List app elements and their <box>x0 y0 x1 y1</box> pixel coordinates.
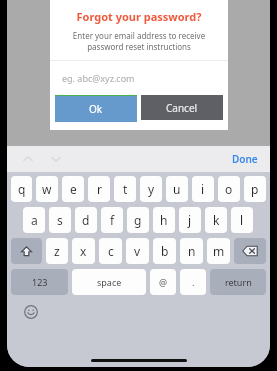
staticText: Ok <box>89 102 103 116</box>
staticText: Cancel <box>166 101 198 115</box>
button[interactable]: eg. abc@xyz.com <box>50 61 228 95</box>
staticText: @ <box>159 276 168 288</box>
staticText: u <box>173 181 181 197</box>
button[interactable]: e <box>62 176 84 202</box>
button[interactable]: 123 <box>11 269 68 295</box>
staticText: a <box>31 212 38 228</box>
button[interactable]: x <box>72 238 95 264</box>
staticText: p <box>251 181 259 197</box>
staticText: n <box>188 243 196 259</box>
staticText: c <box>108 243 114 259</box>
button[interactable]: y <box>140 176 162 202</box>
button[interactable]: q <box>11 176 32 202</box>
staticText: Done <box>232 152 258 166</box>
button[interactable]: @ <box>150 269 176 295</box>
button[interactable]: c <box>99 238 122 264</box>
button[interactable]: Done <box>226 149 264 169</box>
staticText: h <box>160 212 168 228</box>
button[interactable]: o <box>218 176 240 202</box>
button[interactable]: l <box>231 207 253 233</box>
button[interactable]: p <box>244 176 266 202</box>
staticText: eg. abc@xyz.com <box>62 72 135 84</box>
button[interactable]: d <box>75 207 97 233</box>
button[interactable]: n <box>180 238 203 264</box>
button[interactable]: Shift <box>11 238 42 264</box>
staticText: f <box>110 212 115 228</box>
button[interactable]: k <box>205 207 227 233</box>
button[interactable]: t <box>114 176 136 202</box>
staticText: z <box>54 243 60 259</box>
staticText: w <box>42 181 52 197</box>
button[interactable]: Ok <box>55 95 137 122</box>
button[interactable]: r <box>88 176 110 202</box>
button[interactable]: m <box>207 238 230 264</box>
button[interactable]: Backspace <box>234 238 266 264</box>
button[interactable]: u <box>166 176 188 202</box>
button[interactable]: z <box>46 238 68 264</box>
button[interactable]: a <box>23 207 45 233</box>
staticText: 123 <box>32 276 48 288</box>
staticText: m <box>213 243 225 259</box>
staticText: . <box>192 276 195 288</box>
staticText: l <box>240 212 244 228</box>
staticText: space <box>97 276 122 288</box>
staticText: b <box>161 243 169 259</box>
staticText: q <box>18 181 26 197</box>
staticText: x <box>80 243 87 259</box>
staticText: e <box>70 181 77 197</box>
button[interactable]: w <box>36 176 58 202</box>
staticText: s <box>57 212 63 228</box>
button[interactable]: g <box>127 207 149 233</box>
staticText: o <box>225 181 233 197</box>
button[interactable]: Next field <box>45 148 67 170</box>
staticText: d <box>82 212 90 228</box>
button[interactable]: j <box>179 207 201 233</box>
staticText: Enter your email address to receive pass… <box>50 30 228 52</box>
staticText: y <box>148 181 155 197</box>
staticText: Forgot your password? <box>50 9 228 24</box>
staticText: j <box>188 212 192 228</box>
staticText: v <box>134 243 141 259</box>
button[interactable]: space <box>72 269 146 295</box>
staticText: return <box>225 276 252 288</box>
button[interactable]: Emoji <box>23 304 39 320</box>
staticText: i <box>201 181 205 197</box>
button[interactable]: i <box>192 176 214 202</box>
staticText: k <box>213 212 220 228</box>
button[interactable]: v <box>126 238 149 264</box>
staticText: r <box>97 181 102 197</box>
button[interactable]: h <box>153 207 175 233</box>
button[interactable]: Cancel <box>141 95 223 120</box>
button[interactable]: b <box>153 238 176 264</box>
button[interactable]: f <box>101 207 123 233</box>
button[interactable]: return <box>210 269 266 295</box>
staticText: g <box>134 212 142 228</box>
button[interactable]: Previous field <box>17 148 39 170</box>
staticText: t <box>123 181 128 197</box>
button[interactable]: s <box>49 207 71 233</box>
button[interactable]: . <box>180 269 206 295</box>
